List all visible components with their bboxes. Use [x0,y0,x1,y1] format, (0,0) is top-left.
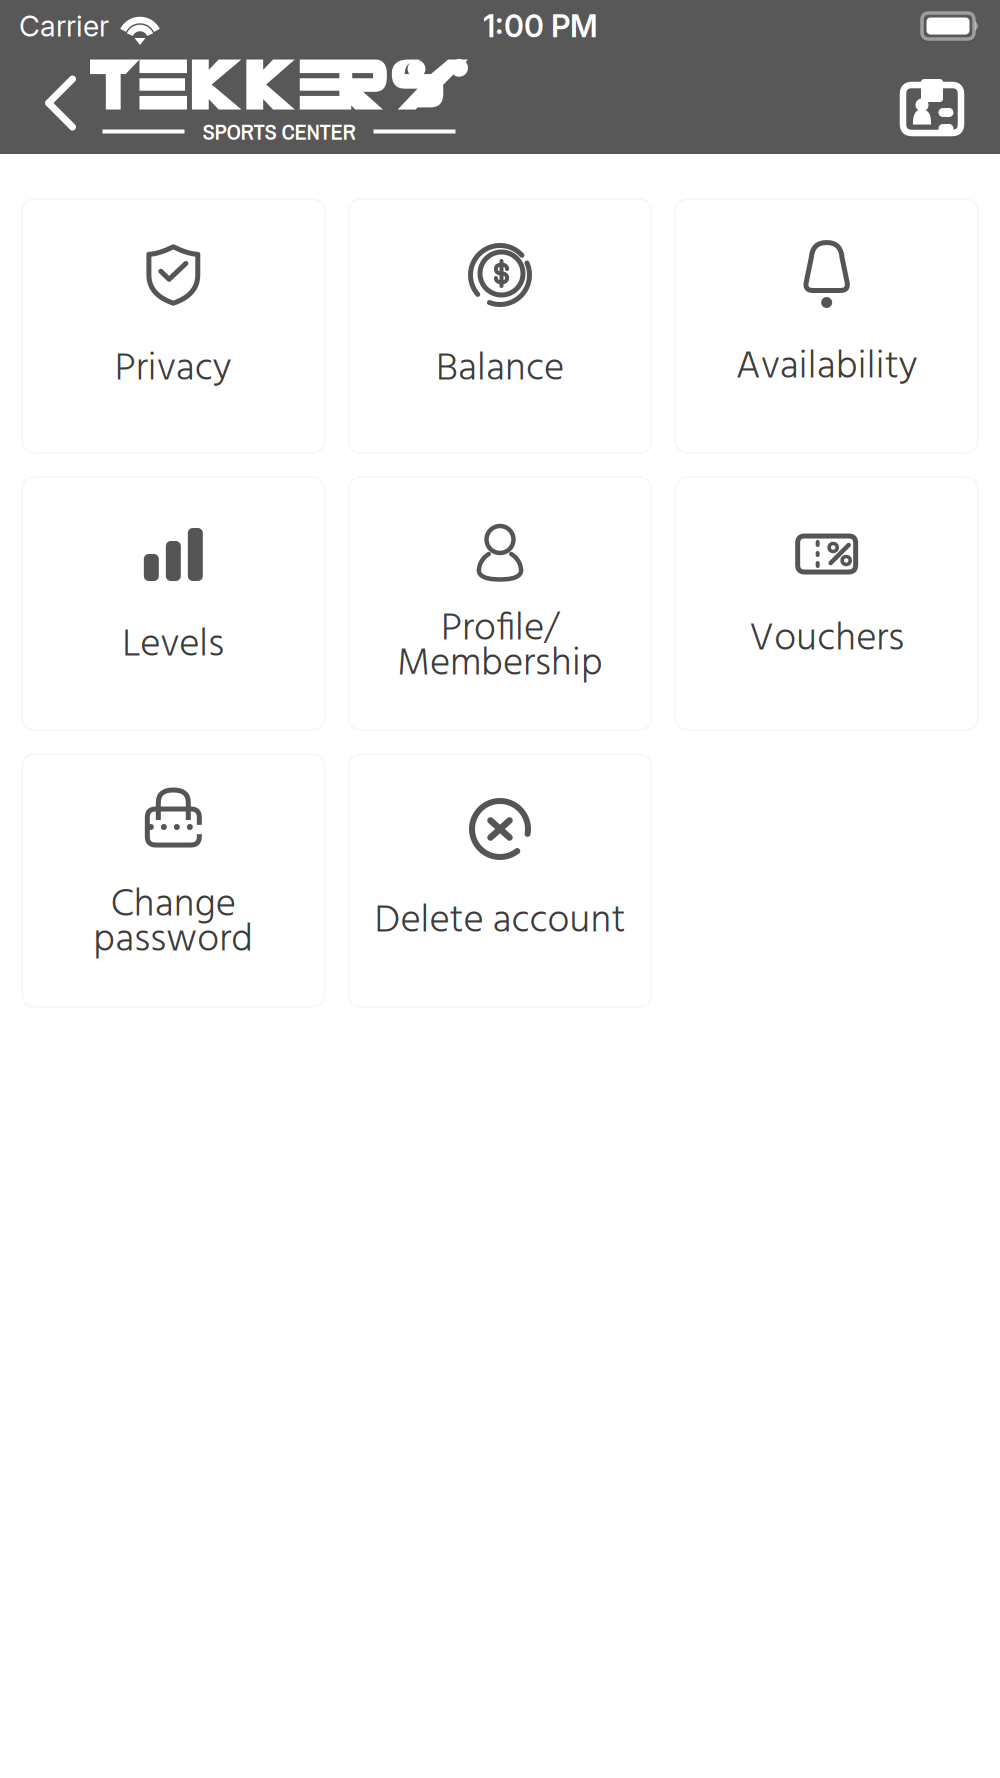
staticText: SPORTS CENTER [202,116,355,147]
button[interactable]: Privacy [22,199,325,453]
staticText: Delete account [374,890,625,953]
staticText: 1:00 PM [483,7,598,44]
staticText: Availability [736,336,918,399]
staticText: Levels [122,614,224,677]
button[interactable]: Vouchers [675,477,978,730]
staticText: password [93,909,253,972]
button[interactable]: Levels [22,477,325,730]
staticText: Carrier [19,9,109,43]
staticText: Change [111,874,236,937]
button[interactable]: Balance [349,199,651,453]
staticText: Privacy [115,338,232,401]
staticText: Balance [436,338,564,401]
staticText: Vouchers [749,608,904,671]
button[interactable]: Change [22,754,325,1007]
button[interactable]: Back [31,60,90,146]
staticText: Profile/ [441,598,559,661]
button[interactable]: Delete account [349,754,651,1007]
button[interactable]: Membership card [887,60,977,146]
staticText: Membership [397,633,603,696]
button[interactable]: Availability [675,199,978,453]
button[interactable]: Profile/ [349,477,651,730]
